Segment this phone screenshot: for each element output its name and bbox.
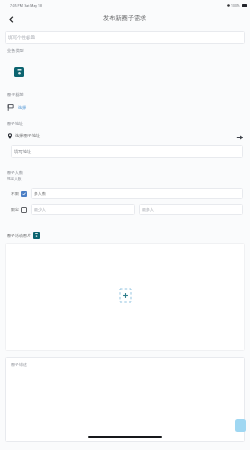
button[interactable]: 最多人 (139, 204, 243, 215)
staticText: 圈子活动图片 (7, 233, 31, 238)
button[interactable]: Submit (235, 419, 246, 432)
staticText: 不限 (11, 191, 19, 196)
button[interactable]: Add photo (120, 289, 131, 302)
staticText: 多人数 (34, 191, 46, 196)
staticText: 规定人数 (7, 177, 22, 182)
staticText: 最多人 (142, 207, 154, 212)
staticText: 业务类型 (7, 48, 24, 53)
staticText: 选择圈子地址 (15, 133, 41, 138)
staticText: 100% (231, 3, 240, 8)
button[interactable]: 最少人 (31, 204, 135, 215)
button[interactable]: Limited checkbox (21, 207, 27, 213)
staticText: 圈子人数 (7, 170, 23, 175)
staticText: 最少人 (34, 207, 46, 212)
button[interactable]: 圈子描述 (5, 357, 245, 442)
staticText: 填写地址 (14, 149, 32, 154)
staticText: 填写个性标题 (8, 35, 35, 41)
staticText: 圈子描述 (11, 362, 27, 367)
staticText: 选择 (18, 105, 27, 110)
button[interactable]: 填写地址 (11, 145, 243, 158)
staticText: 7:05 PM Sat May 18 (10, 3, 42, 8)
button[interactable]: Unlimited checkbox (21, 191, 27, 197)
staticText: 圈子标签 (7, 92, 24, 97)
button[interactable]: Image info (33, 232, 40, 239)
button[interactable]: 多人数 (31, 188, 243, 199)
button[interactable]: 选择 (7, 103, 27, 112)
button[interactable]: Business type (14, 67, 24, 77)
staticText: 圈子地址 (7, 121, 23, 126)
button[interactable]: 填写个性标题 (5, 31, 245, 44)
staticText: 发布新圈子需求 (103, 14, 147, 22)
button[interactable]: Back (3, 11, 19, 27)
staticText: 限定 (11, 207, 19, 212)
button[interactable]: 选择圈子地址 (7, 131, 243, 140)
other: Choose address (236, 134, 243, 141)
